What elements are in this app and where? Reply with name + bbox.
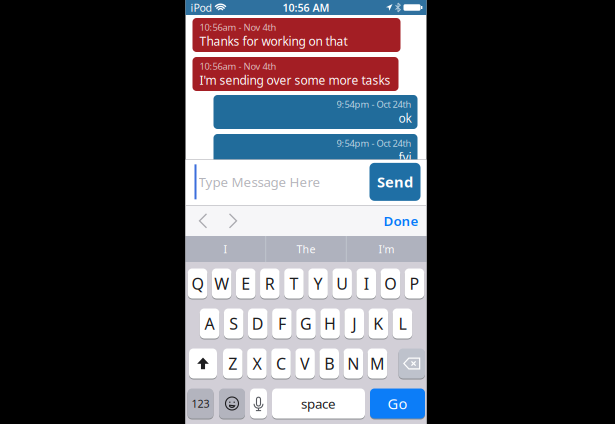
- staticText: F: [278, 313, 286, 334]
- staticText: P: [409, 273, 419, 294]
- staticText: G: [300, 313, 312, 334]
- staticText: Y: [314, 273, 323, 294]
- staticText: D: [252, 313, 264, 334]
- staticText: A: [205, 313, 215, 334]
- button[interactable]: J: [344, 308, 364, 338]
- button[interactable]: I: [356, 268, 376, 298]
- staticText: space: [301, 395, 336, 412]
- button[interactable]: F: [272, 308, 292, 338]
- button[interactable]: I: [186, 236, 265, 262]
- staticText: B: [324, 353, 334, 374]
- button[interactable]: V: [295, 348, 315, 378]
- staticText: E: [241, 273, 250, 294]
- button[interactable]: Shift: [189, 348, 217, 378]
- staticText: C: [276, 353, 286, 374]
- button[interactable]: R: [260, 268, 280, 298]
- button[interactable]: Y: [308, 268, 328, 298]
- button[interactable]: The: [266, 236, 346, 262]
- staticText: iPod: [190, 0, 212, 15]
- staticText: I'm sending over some more tasks: [199, 72, 390, 88]
- staticText: Done: [383, 212, 418, 230]
- button[interactable]: Previous: [198, 213, 207, 228]
- staticText: Q: [192, 273, 204, 294]
- staticText: 10:56 AM: [282, 0, 329, 15]
- staticText: W: [214, 273, 229, 294]
- button[interactable]: T: [284, 268, 304, 298]
- staticText: 9:54pm - Oct 24th: [336, 98, 411, 110]
- button[interactable]: S: [224, 308, 243, 338]
- button[interactable]: E: [236, 268, 255, 298]
- button[interactable]: N: [343, 348, 363, 378]
- staticText: K: [373, 313, 383, 334]
- staticText: O: [384, 273, 396, 294]
- button[interactable]: Done: [383, 212, 418, 230]
- button[interactable]: A: [200, 308, 219, 338]
- button[interactable]: Z: [223, 348, 243, 378]
- staticText: Thanks for working on that: [199, 33, 347, 49]
- staticText: S: [229, 313, 238, 334]
- button[interactable]: Delete: [398, 348, 425, 378]
- staticText: H: [324, 313, 336, 334]
- staticText: Type Message Here: [198, 173, 320, 191]
- staticText: R: [265, 273, 275, 294]
- button[interactable]: W: [212, 268, 231, 298]
- staticText: Z: [228, 353, 237, 374]
- staticText: T: [289, 273, 298, 294]
- button[interactable]: Q: [188, 268, 207, 298]
- button[interactable]: Send: [369, 163, 420, 201]
- button[interactable]: U: [332, 268, 352, 298]
- button[interactable]: D: [248, 308, 268, 338]
- staticText: I'm: [379, 242, 395, 256]
- button[interactable]: X: [247, 348, 267, 378]
- button[interactable]: Emoji: [219, 388, 245, 418]
- button[interactable]: Next: [228, 213, 237, 228]
- button[interactable]: O: [380, 268, 400, 298]
- staticText: J: [352, 313, 356, 334]
- staticText: L: [398, 313, 406, 334]
- button[interactable]: K: [368, 308, 388, 338]
- button[interactable]: I'm: [347, 236, 426, 262]
- button[interactable]: Dictate: [250, 388, 267, 418]
- staticText: 9:54pm - Oct 24th: [336, 137, 411, 149]
- button[interactable]: M: [368, 348, 387, 378]
- staticText: M: [370, 353, 385, 374]
- staticText: U: [336, 273, 348, 294]
- staticText: The: [296, 242, 315, 256]
- staticText: fyi: [398, 149, 411, 165]
- staticText: N: [347, 353, 359, 374]
- staticText: ok: [398, 110, 411, 126]
- staticText: I: [364, 273, 369, 294]
- button[interactable]: Type Message Here: [194, 162, 369, 202]
- staticText: I: [223, 242, 227, 256]
- staticText: Go: [387, 394, 407, 413]
- button[interactable]: L: [393, 308, 412, 338]
- staticText: 123: [191, 396, 209, 411]
- staticText: V: [300, 353, 310, 374]
- button[interactable]: P: [405, 268, 424, 298]
- button[interactable]: C: [271, 348, 291, 378]
- button[interactable]: Go: [370, 388, 425, 418]
- staticText: Send: [377, 172, 413, 192]
- staticText: X: [252, 353, 261, 374]
- button[interactable]: space: [272, 388, 365, 418]
- staticText: 10:56am - Nov 4th: [199, 60, 276, 72]
- button[interactable]: B: [319, 348, 339, 378]
- button[interactable]: 123: [187, 388, 213, 418]
- button[interactable]: G: [296, 308, 316, 338]
- staticText: 10:56am - Nov 4th: [199, 21, 276, 33]
- button[interactable]: H: [320, 308, 340, 338]
